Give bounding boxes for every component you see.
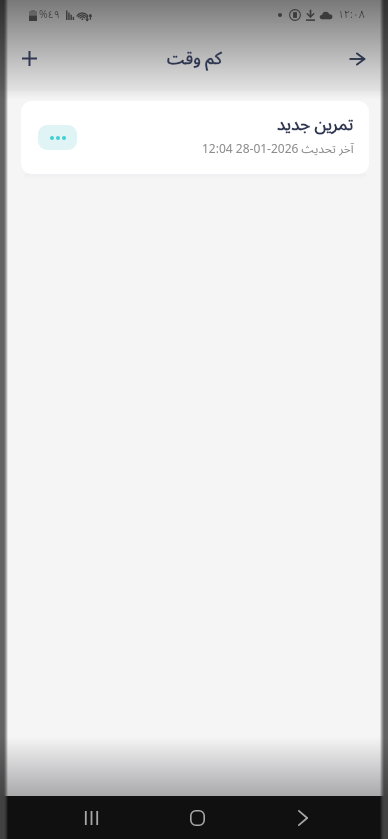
staticText: آخر تحديث 2026-01-28 12:04 <box>202 137 354 162</box>
staticText: كم وقت <box>167 41 222 77</box>
button[interactable]: More options <box>38 125 77 150</box>
button[interactable]: Back <box>335 37 378 80</box>
button[interactable]: Recents <box>67 796 115 839</box>
staticText: %٤٩ <box>39 4 60 26</box>
button[interactable]: Back <box>279 796 327 839</box>
button[interactable]: Add <box>8 37 51 80</box>
staticText: تمرين جديد <box>277 107 354 143</box>
button[interactable]: More options <box>21 101 369 174</box>
staticText: ١٢:٠٨ <box>338 4 365 26</box>
button[interactable]: Home <box>173 796 221 839</box>
